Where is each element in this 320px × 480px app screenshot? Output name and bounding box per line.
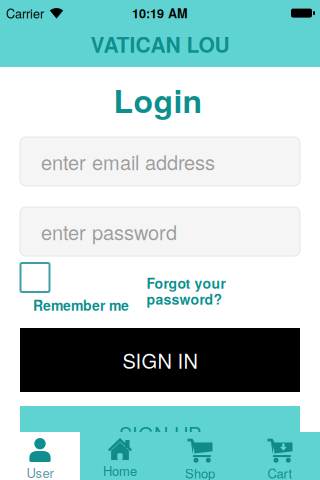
staticText: VATICAN LOU [90,29,229,59]
staticText: password? [146,289,222,309]
staticText: enter email address [41,147,215,176]
button[interactable]: Home [80,432,160,480]
button[interactable]: Shop [160,432,240,480]
staticText: enter password [41,217,177,246]
button[interactable]: Cart [240,432,320,480]
staticText: Home [103,461,137,480]
staticText: User [26,463,53,480]
button[interactable]: Forgot your [146,273,225,309]
staticText: 10:19 AM [132,4,188,22]
button[interactable]: SIGN IN [20,328,300,392]
staticText: SIGN UP [119,419,201,448]
button[interactable]: User [0,432,80,480]
staticText: Carrier [6,4,44,22]
button[interactable]: Remember me checkbox [20,263,49,292]
button[interactable]: enter password [20,207,300,256]
button[interactable]: enter email address [20,137,300,186]
staticText: Remember me [33,295,129,315]
staticText: Login [113,77,202,123]
staticText: SIGN IN [122,346,197,374]
button[interactable]: SIGN UP [20,406,300,480]
staticText: Cart [267,464,292,480]
staticText: Shop [185,464,215,480]
staticText: Forgot your [146,273,225,293]
